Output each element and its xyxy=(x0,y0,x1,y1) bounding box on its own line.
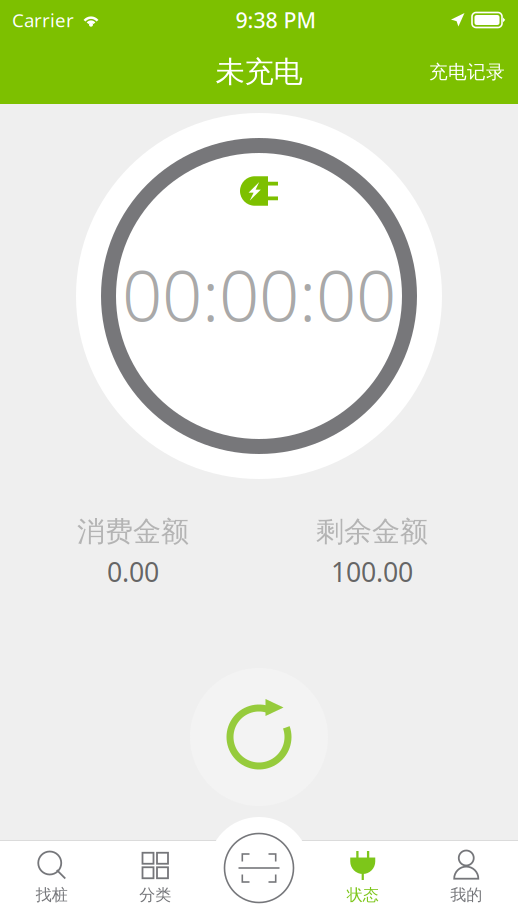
button[interactable]: 我的 xyxy=(414,840,518,920)
button[interactable]: 充电记录 xyxy=(416,40,518,104)
button[interactable]: Scan xyxy=(208,817,310,919)
staticText: 未充电 xyxy=(215,54,302,90)
staticText: 状态 xyxy=(347,885,379,905)
staticText: 消费金额 xyxy=(77,515,189,549)
button[interactable]: 分类 xyxy=(103,840,207,920)
staticText: 充电记录 xyxy=(429,60,505,83)
staticText: 0.00 xyxy=(107,554,159,589)
staticText: 找桩 xyxy=(36,885,68,905)
staticText: 分类 xyxy=(139,885,171,905)
staticText: Carrier xyxy=(12,8,74,32)
staticText: 00:00:00 xyxy=(122,247,396,341)
button[interactable]: Refresh xyxy=(190,668,328,806)
staticText: 100.00 xyxy=(331,554,413,589)
staticText: 我的 xyxy=(450,885,482,905)
button[interactable]: 状态 xyxy=(311,840,414,920)
staticText: 剩余金额 xyxy=(316,515,428,549)
staticText: 9:38 PM xyxy=(235,6,316,34)
button[interactable]: 找桩 xyxy=(0,840,103,920)
